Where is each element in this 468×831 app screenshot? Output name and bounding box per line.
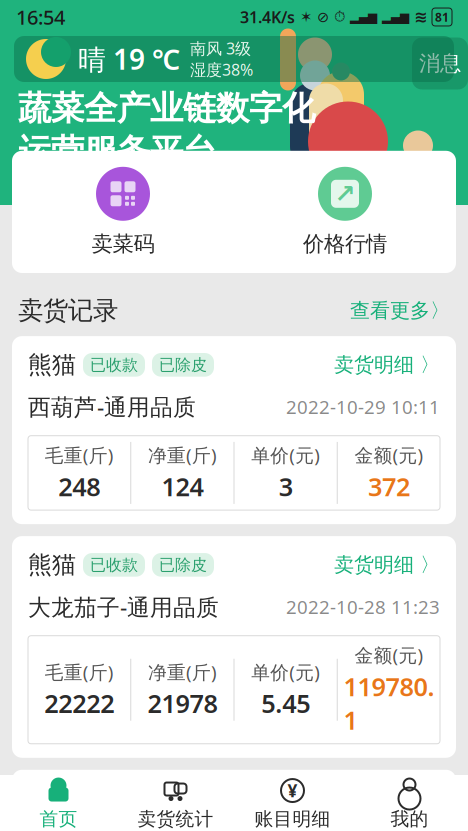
staticText: 熊猫 bbox=[28, 350, 76, 380]
button[interactable]: 首页 bbox=[0, 777, 117, 830]
staticText: 海之蔬菜购... bbox=[28, 784, 169, 816]
staticText: 卖货记录 bbox=[18, 295, 118, 326]
staticText: 单价(元) bbox=[251, 443, 320, 467]
staticText: 熊猫 bbox=[28, 550, 76, 580]
staticText: 31.4K/s bbox=[240, 6, 295, 28]
staticText: 卖货统计 bbox=[137, 807, 213, 830]
staticText: 5.45 bbox=[261, 686, 310, 720]
staticText: 毛重(斤) bbox=[45, 443, 114, 467]
staticText: 124 bbox=[161, 469, 203, 503]
staticText: 卖货明细 〉 bbox=[334, 787, 440, 812]
staticText: 黄瓜-通用品质 bbox=[28, 828, 173, 831]
staticText: ≋ bbox=[414, 8, 427, 26]
staticText: 首页 bbox=[39, 807, 77, 830]
staticText: 净重(斤) bbox=[148, 443, 217, 467]
staticText: ⊘ bbox=[317, 9, 329, 25]
staticText: 81 bbox=[435, 9, 449, 25]
staticText: 已收款 bbox=[90, 355, 138, 375]
staticText: ▂▄▆ bbox=[382, 10, 409, 24]
staticText: ↗ bbox=[334, 179, 355, 208]
staticText: 未除皮 bbox=[252, 790, 300, 810]
staticText: ¥ bbox=[287, 779, 297, 802]
staticText: 我的 bbox=[390, 807, 428, 830]
staticText: 湿度38% bbox=[190, 59, 253, 80]
staticText: ⏱ bbox=[334, 10, 345, 24]
staticText: 西葫芦-通用品质 bbox=[28, 392, 196, 422]
button[interactable]: 查看更多〉 bbox=[350, 298, 450, 323]
button[interactable]: 熊猫 bbox=[12, 336, 456, 524]
staticText: 单价(元) bbox=[251, 659, 320, 684]
staticText: 查看更多〉 bbox=[350, 298, 450, 323]
staticText: 卖货明细 〉 bbox=[334, 553, 440, 577]
button[interactable]: 海之蔬菜购... bbox=[12, 770, 456, 831]
staticText: 248 bbox=[58, 469, 100, 503]
staticText: ▂▄▆ bbox=[350, 10, 377, 24]
button[interactable]: 消息 bbox=[412, 37, 468, 89]
staticText: 已除皮 bbox=[159, 555, 207, 575]
staticText: 消息 bbox=[419, 50, 461, 77]
staticText: 净重(斤) bbox=[148, 659, 217, 684]
staticText: 已除皮 bbox=[159, 355, 207, 375]
staticText: 未定价 bbox=[183, 790, 231, 810]
staticText: 毛重(斤) bbox=[45, 659, 114, 684]
button[interactable]: 我的 bbox=[351, 777, 468, 830]
staticText: 372 bbox=[368, 469, 410, 503]
staticText: 22222 bbox=[44, 686, 114, 720]
staticText: 119780.1 bbox=[343, 669, 434, 737]
button[interactable]: 熊猫 bbox=[12, 536, 456, 758]
staticText: 21978 bbox=[147, 686, 217, 720]
staticText: ✶ bbox=[300, 9, 312, 25]
staticText: 金额(元) bbox=[354, 643, 423, 667]
staticText: 3 bbox=[279, 469, 293, 503]
button[interactable]: 卖货统计 bbox=[117, 777, 234, 830]
staticText: 大龙茄子-通用品质 bbox=[28, 592, 219, 622]
button[interactable]: ¥ bbox=[234, 777, 351, 830]
staticText: 16:54 bbox=[16, 4, 65, 30]
staticText: 账目明细 bbox=[254, 807, 330, 830]
staticText: 卖菜码 bbox=[91, 231, 154, 257]
staticText: 价格行情 bbox=[303, 231, 387, 257]
staticText: 2022-10-28 11:23 bbox=[286, 594, 440, 619]
staticText: 金额(元) bbox=[354, 443, 423, 467]
button[interactable]: ↗ bbox=[234, 167, 456, 257]
staticText: 南风 3级 bbox=[190, 38, 251, 59]
staticText: 蔬菜全产业链数字化 bbox=[18, 88, 315, 129]
button[interactable]: 卖菜码 bbox=[12, 167, 234, 257]
staticText: 晴 19 ℃ bbox=[78, 40, 180, 78]
staticText: 卖货明细 〉 bbox=[334, 353, 440, 377]
staticText: 2022-10-29 10:11 bbox=[286, 394, 440, 419]
staticText: 运营服务平台 bbox=[18, 131, 216, 172]
staticText: 已收款 bbox=[90, 555, 138, 575]
